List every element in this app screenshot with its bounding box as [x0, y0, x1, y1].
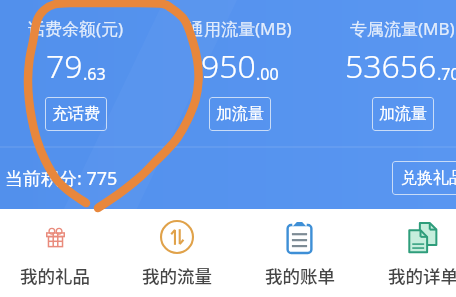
other: 我的详单 — [406, 221, 439, 254]
staticText: .63 — [83, 63, 106, 85]
staticText: 充话费 — [52, 104, 100, 124]
staticText: .00 — [256, 63, 279, 85]
button[interactable]: 加流量 — [209, 97, 271, 131]
staticText: 我的账单 — [265, 263, 335, 288]
staticText: 53656 — [345, 44, 437, 88]
button[interactable]: 我的账单 — [238, 212, 361, 294]
staticText: 当前积分: 775 — [5, 166, 118, 191]
button[interactable]: 加流量 — [372, 97, 434, 131]
button[interactable]: 兑换礼品 — [392, 161, 456, 195]
staticText: 我的流量 — [142, 263, 212, 288]
staticText: 950 — [201, 44, 256, 88]
staticText: 话费余额(元) — [28, 17, 124, 40]
staticText: 加流量 — [379, 104, 427, 124]
staticText: .70 — [437, 63, 456, 85]
button[interactable]: 我的详单 — [361, 212, 456, 294]
other: 我的账单 — [283, 221, 316, 254]
button[interactable]: 我的礼品 — [0, 212, 116, 294]
staticText: 兑换礼品 — [401, 168, 456, 188]
staticText: 我的礼品 — [20, 263, 90, 288]
staticText: 专属流量(MB) — [350, 17, 455, 40]
other: 我的流量 — [160, 220, 194, 254]
staticText: 加流量 — [216, 104, 264, 124]
other: 我的礼品 — [46, 228, 65, 247]
staticText: 79 — [46, 44, 83, 88]
button[interactable]: 我的流量 — [116, 212, 238, 294]
button[interactable]: 充话费 — [45, 97, 107, 131]
staticText: 我的详单 — [388, 263, 456, 288]
staticText: 通用流量(MB) — [187, 17, 292, 40]
